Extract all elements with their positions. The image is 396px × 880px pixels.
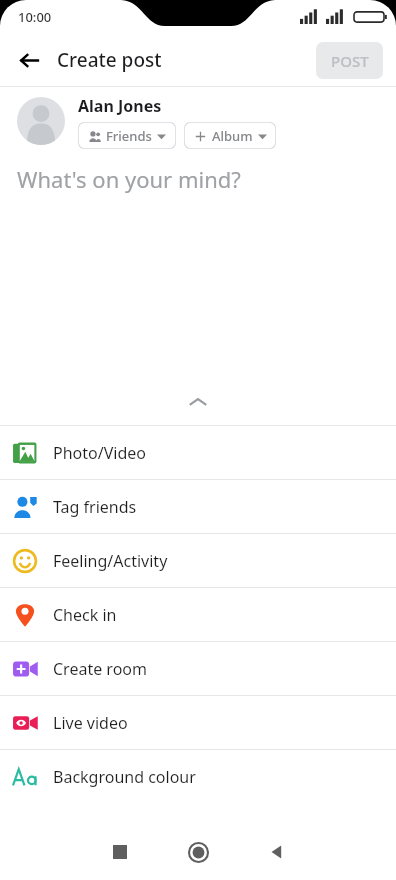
button[interactable]: Album — [184, 122, 276, 149]
button[interactable]: Friends — [78, 122, 176, 149]
staticText: What's on your mind? — [17, 164, 241, 194]
button[interactable]: Tag friends — [0, 480, 396, 533]
staticText: Feeling/Activity — [53, 550, 168, 572]
staticText: Alan Jones — [78, 95, 162, 117]
button[interactable]: Back — [10, 41, 48, 79]
button[interactable]: Photo/Video — [0, 426, 396, 479]
staticText: Album — [212, 127, 253, 145]
button[interactable]: Create room — [0, 642, 396, 695]
button[interactable]: Feeling/Activity — [0, 534, 396, 587]
staticText: 10:00 — [18, 8, 52, 26]
staticText: Create room — [53, 658, 147, 680]
staticText: Friends — [106, 127, 152, 145]
staticText: Tag friends — [53, 496, 137, 518]
button[interactable]: What's on your mind? — [0, 155, 396, 227]
button[interactable]: Back — [257, 832, 297, 872]
button[interactable]: Profile picture — [17, 97, 65, 145]
staticText: Check in — [53, 604, 117, 626]
button[interactable]: Recent apps — [100, 832, 140, 872]
staticText: Create post — [57, 47, 162, 73]
staticText: Background colour — [53, 766, 196, 788]
staticText: POST — [331, 51, 369, 71]
button[interactable]: Live video — [0, 696, 396, 749]
staticText: Photo/Video — [53, 442, 146, 464]
button[interactable]: POST — [316, 42, 383, 79]
button[interactable]: Home — [176, 830, 220, 874]
staticText: Live video — [53, 712, 128, 734]
button[interactable]: Background colour — [0, 750, 396, 803]
button[interactable]: Check in — [0, 588, 396, 641]
